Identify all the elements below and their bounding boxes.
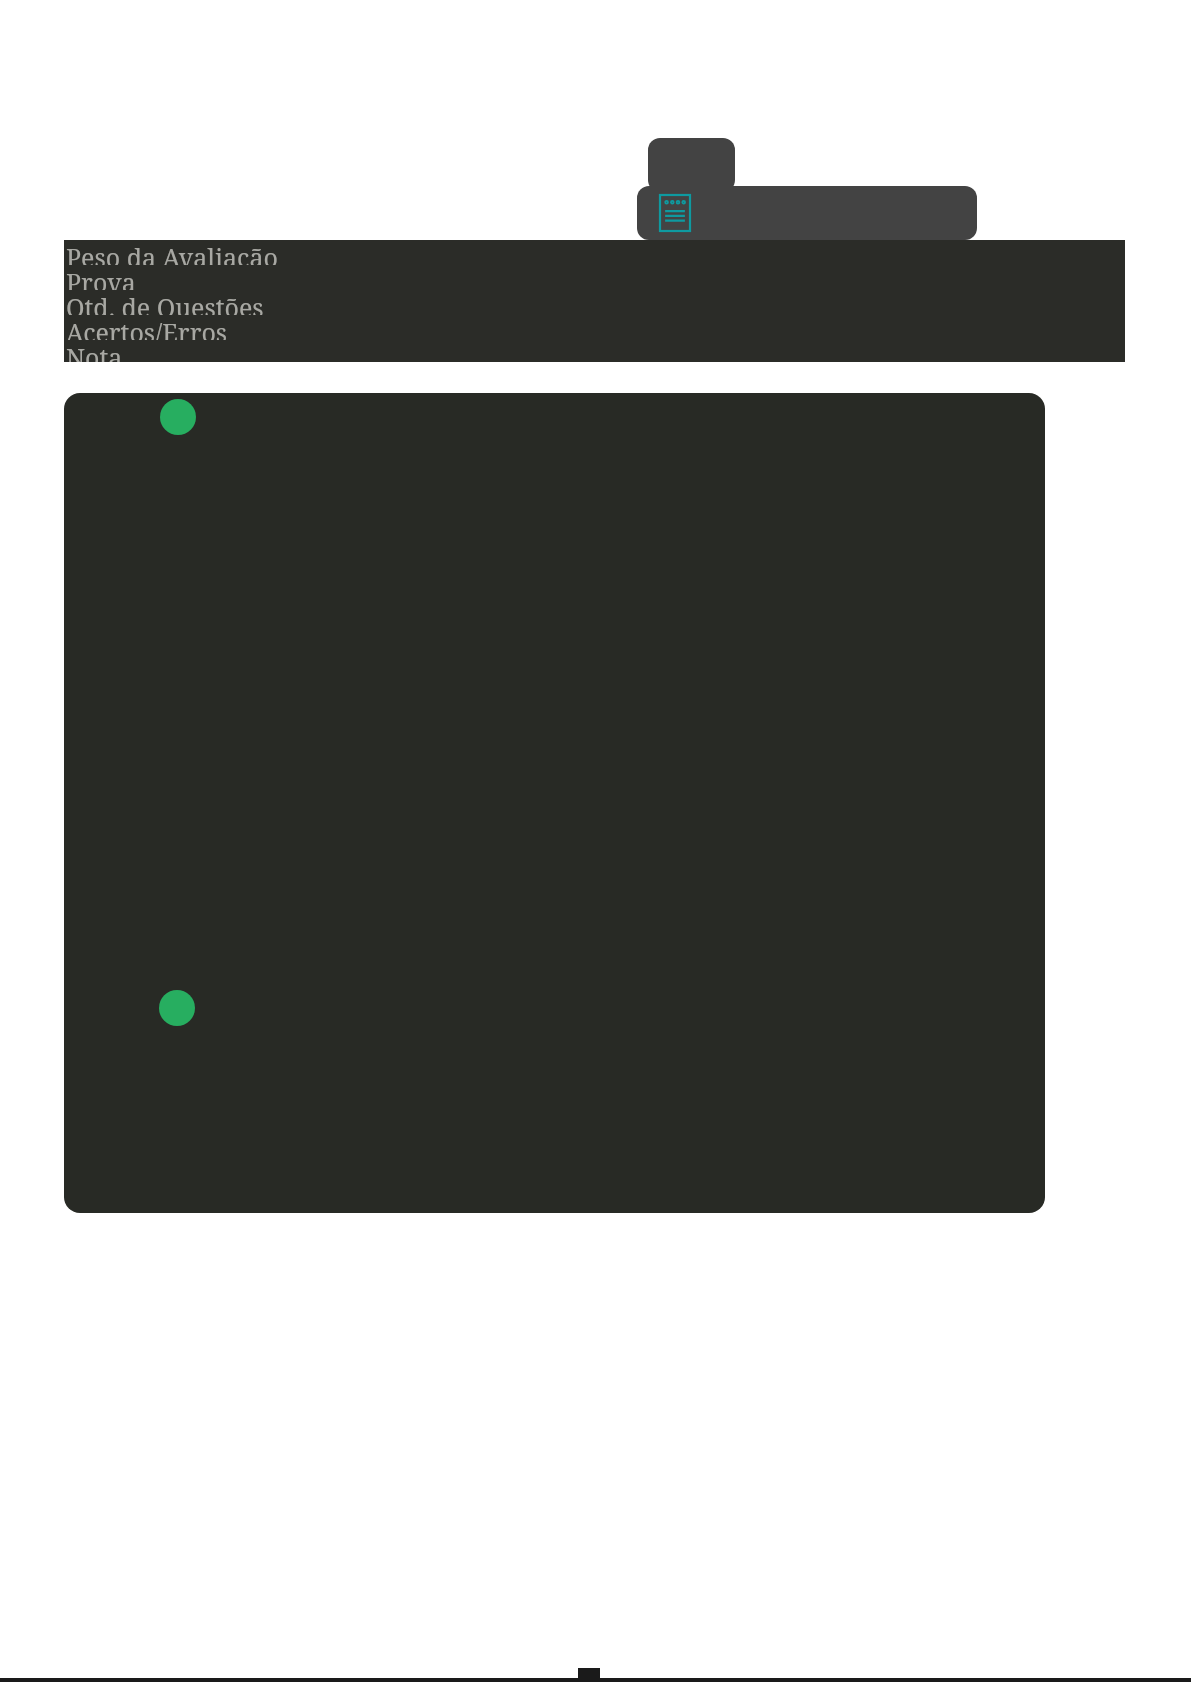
- button[interactable]: Nota: [64, 340, 1125, 362]
- button[interactable]: Status indicator 2: [159, 990, 195, 1026]
- button[interactable]: Status indicator 1: [160, 399, 196, 435]
- button[interactable]: Document list: [660, 195, 690, 231]
- staticText: Prova: [66, 265, 136, 290]
- button[interactable]: Acertos/Erros: [64, 315, 1125, 340]
- button[interactable]: Qtd. de Questões: [64, 290, 1125, 315]
- staticText: Acertos/Erros: [66, 315, 228, 340]
- button[interactable]: Prova: [64, 265, 1125, 290]
- button[interactable]: Tab: [648, 138, 735, 192]
- staticText: Peso da Avaliação: [66, 240, 278, 265]
- staticText: Qtd. de Questões: [66, 290, 264, 315]
- button[interactable]: Peso da Avaliação: [64, 240, 1125, 265]
- staticText: Nota: [66, 340, 123, 362]
- button[interactable]: Status indicator 1: [64, 393, 1045, 1213]
